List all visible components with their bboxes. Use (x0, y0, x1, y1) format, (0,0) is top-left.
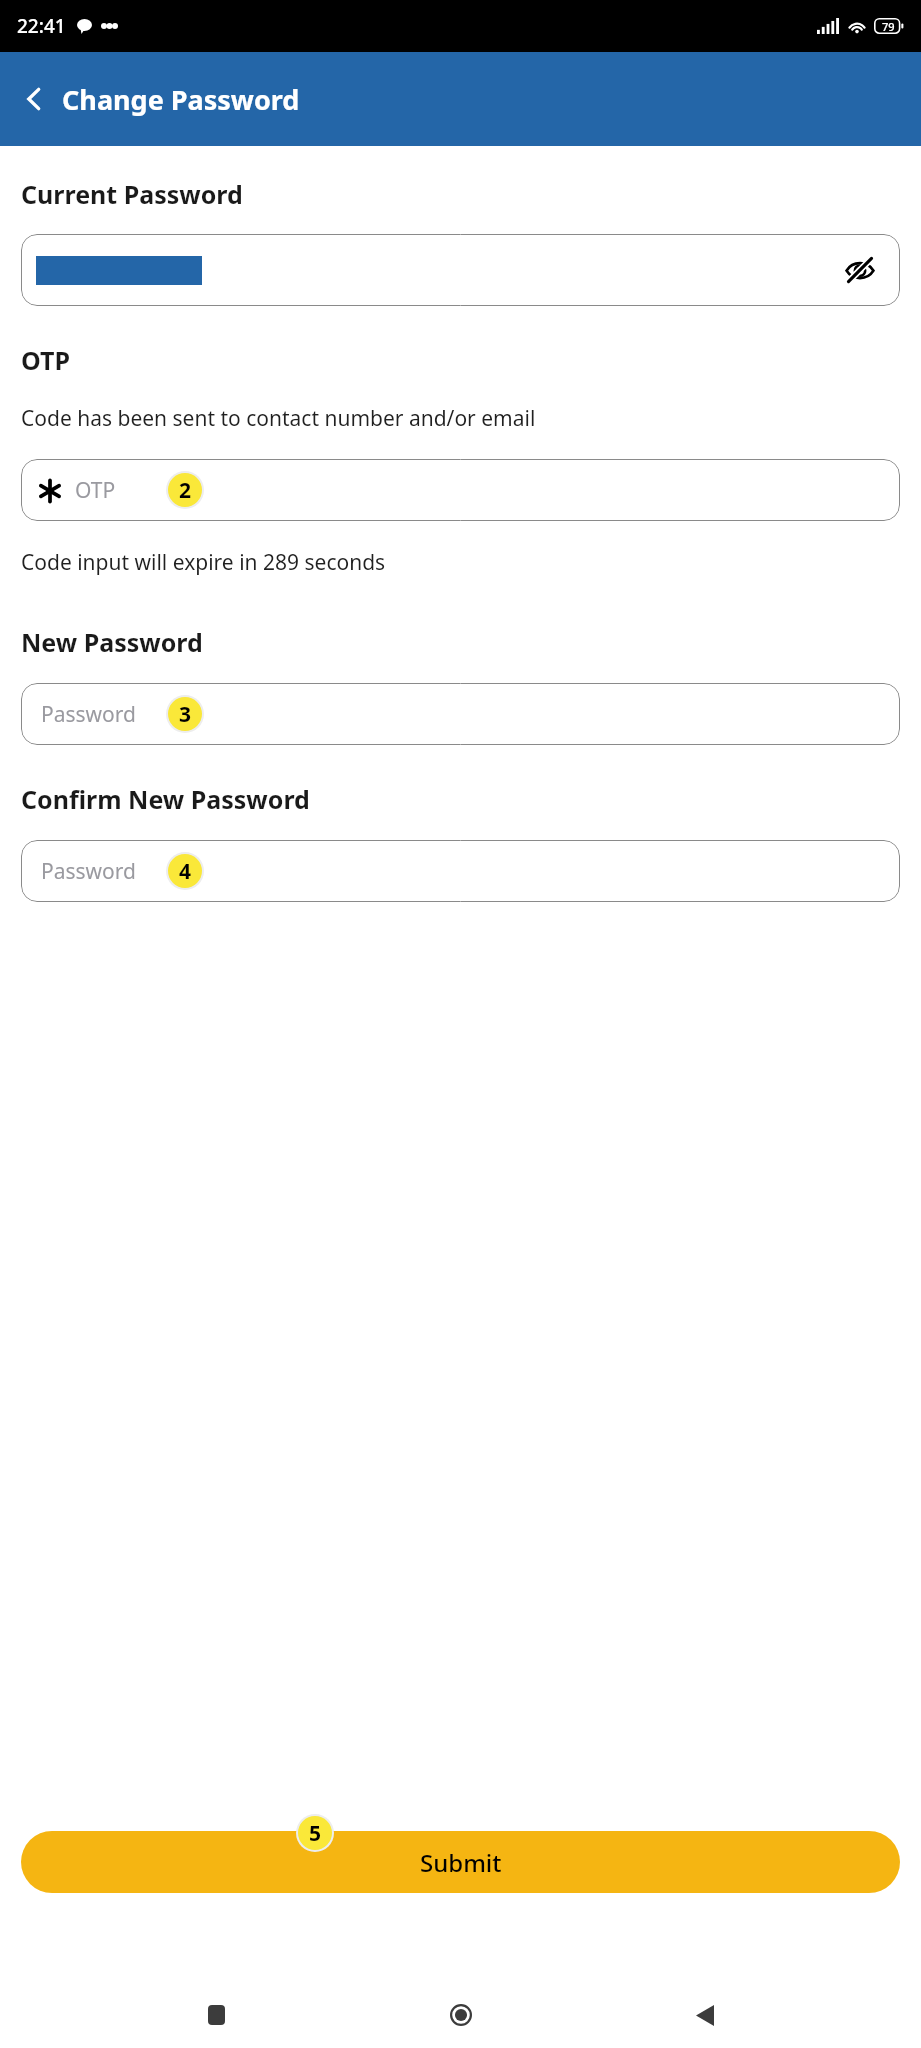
staticText: 22:41 (17, 13, 66, 39)
button[interactable]: Home (433, 1987, 489, 2043)
staticText: Code input will expire in 289 seconds (21, 548, 386, 577)
button[interactable]: Back (6, 71, 62, 127)
staticText: Change Password (62, 81, 300, 118)
staticText: Password (41, 700, 136, 729)
button[interactable]: Password (21, 683, 900, 745)
staticText: Password (41, 857, 136, 886)
button[interactable]: Password (21, 840, 900, 902)
staticText: 5 (309, 1819, 322, 1848)
staticText: 4 (179, 857, 192, 886)
staticText: Submit (420, 1846, 502, 1879)
staticText: 79 (882, 19, 895, 34)
staticText: Confirm New Password (21, 782, 310, 816)
button[interactable]: Submit (21, 1831, 900, 1893)
button[interactable]: Back (677, 1987, 733, 2043)
staticText: 3 (179, 700, 192, 729)
staticText: 2 (179, 476, 192, 505)
staticText: Current Password (21, 177, 243, 211)
button[interactable]: Recent apps (188, 1987, 244, 2043)
staticText: Code has been sent to contact number and… (21, 404, 536, 433)
button[interactable]: Toggle password visibility (840, 250, 880, 290)
staticText: OTP (21, 343, 70, 377)
button[interactable]: OTP (21, 459, 900, 521)
staticText: New Password (21, 625, 203, 659)
button[interactable]: Toggle password visibility (21, 234, 900, 306)
staticText: OTP (75, 476, 116, 505)
